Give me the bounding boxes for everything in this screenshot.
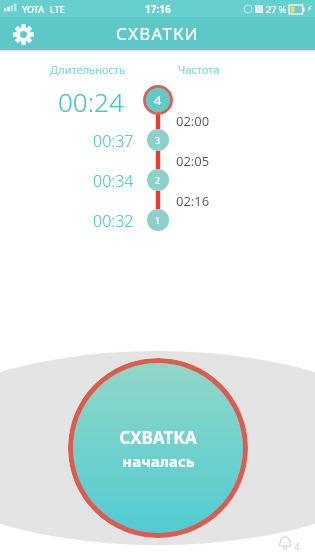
- staticText: Частота: [178, 62, 220, 77]
- staticText: YOTA: [22, 3, 45, 15]
- staticText: 02:16: [176, 192, 210, 210]
- staticText: СХВАТКА: [119, 426, 197, 449]
- button[interactable]: 1: [147, 209, 169, 231]
- staticText: началась: [122, 451, 195, 471]
- staticText: 00:34: [93, 170, 134, 192]
- staticText: 17:16: [145, 2, 171, 16]
- staticText: 02:00: [176, 112, 210, 130]
- staticText: 1: [155, 214, 161, 226]
- staticText: СХВАТКИ: [116, 22, 199, 45]
- staticText: 4: [154, 91, 162, 109]
- button[interactable]: 4: [143, 85, 173, 115]
- staticText: Длительность: [50, 62, 125, 77]
- staticText: 27 %: [266, 3, 287, 15]
- staticText: LTE: [50, 3, 65, 15]
- button[interactable]: 3: [147, 129, 169, 151]
- staticText: 00:37: [93, 130, 134, 152]
- button[interactable]: Notifications: [277, 530, 311, 556]
- staticText: 3: [155, 134, 161, 146]
- staticText: 00:24: [58, 84, 124, 119]
- staticText: ⚡: [307, 5, 312, 13]
- staticText: 00:32: [93, 210, 134, 232]
- button[interactable]: СХВАТКА: [68, 358, 248, 538]
- button[interactable]: Settings: [8, 19, 38, 49]
- staticText: 4: [294, 540, 300, 554]
- staticText: 02:05: [176, 152, 210, 170]
- button[interactable]: 2: [147, 169, 169, 191]
- staticText: 2: [155, 174, 161, 186]
